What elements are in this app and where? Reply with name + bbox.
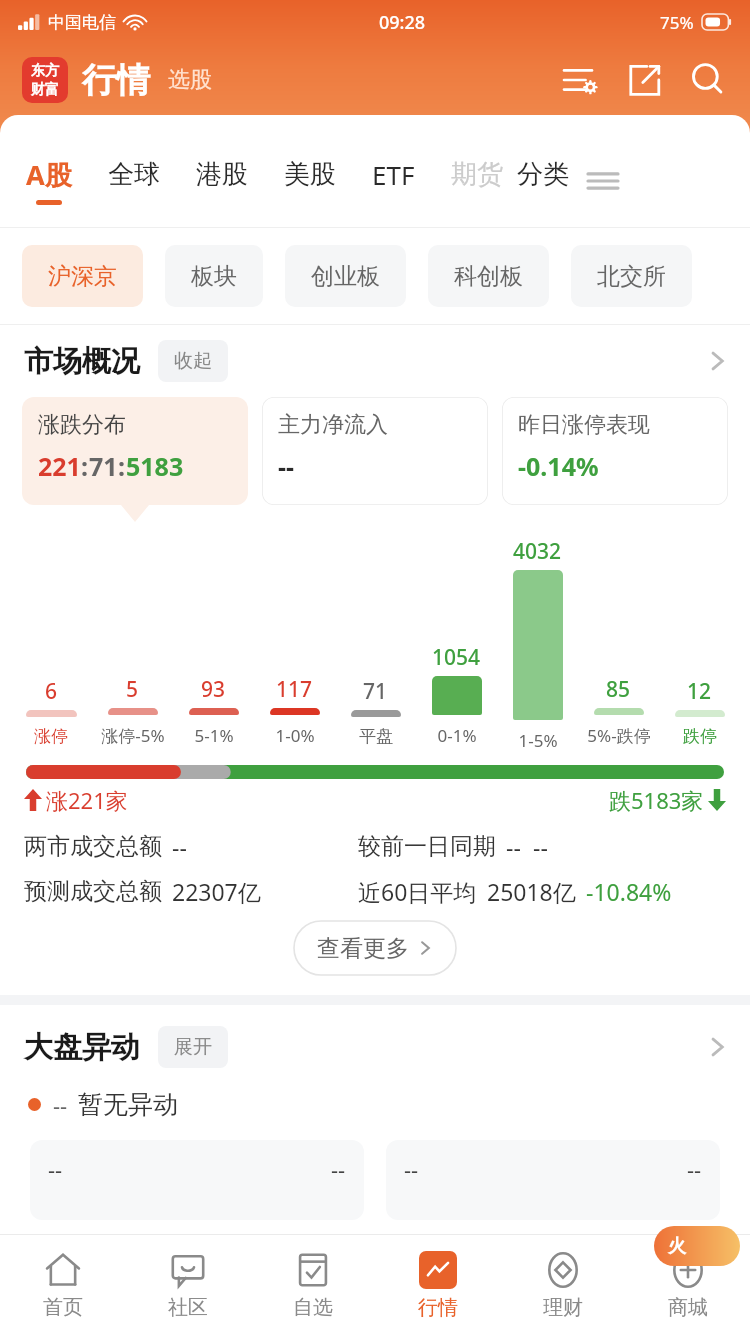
button[interactable]: More tabs [583, 161, 623, 201]
staticText: 71 [89, 449, 118, 483]
staticText: 创业板 [311, 262, 380, 291]
staticText: 221 [38, 449, 81, 483]
staticText: 市场概况 [24, 343, 140, 380]
staticText: 22307亿 [172, 876, 261, 907]
button[interactable]: 科创板 [428, 245, 549, 307]
staticText: 沪深京 [48, 262, 117, 291]
button[interactable]: ETF [372, 157, 415, 204]
staticText: 理财 [543, 1295, 583, 1320]
staticText: 1-5% [518, 729, 558, 747]
button[interactable]: 全球 [108, 158, 160, 203]
staticText: 财富 [31, 81, 59, 99]
staticText: 75% [660, 11, 694, 34]
staticText: 展开 [174, 1035, 212, 1059]
staticText: 71 [363, 677, 388, 706]
staticText: -- [687, 1154, 702, 1184]
staticText: 科创板 [454, 262, 523, 291]
staticText: 昨日涨停表现 [518, 411, 650, 439]
staticText: : [118, 449, 126, 483]
staticText: 主力净流入 [278, 411, 388, 439]
staticText: 商城 [668, 1295, 708, 1320]
button[interactable]: 行情 [375, 1235, 500, 1334]
button[interactable]: Share [622, 56, 670, 104]
staticText: 近60日平均 [358, 876, 477, 907]
staticText: 5%-跌停 [587, 724, 651, 747]
staticText: 跌停 [683, 726, 717, 747]
staticText: -- [533, 831, 548, 862]
staticText: -- [53, 1090, 68, 1120]
button[interactable]: -- [386, 1140, 720, 1220]
button[interactable]: 商城 [625, 1235, 750, 1334]
staticText: 预测成交总额 [24, 877, 162, 906]
button[interactable]: 收起 [158, 340, 228, 382]
staticText: 暂无异动 [78, 1089, 178, 1120]
button[interactable]: Search [684, 56, 732, 104]
staticText: 较前一日同期 [358, 832, 496, 861]
staticText: 117 [276, 675, 313, 704]
staticText: A股 [26, 156, 72, 193]
button[interactable]: 分类 [517, 158, 569, 203]
button[interactable]: 北交所 [571, 245, 692, 307]
staticText: 社区 [168, 1295, 208, 1320]
staticText: 涨停-5% [101, 724, 165, 747]
staticText: 09:28 [379, 10, 426, 35]
button[interactable]: 板块 [165, 245, 263, 307]
button[interactable]: 昨日涨停表现 [502, 397, 728, 505]
button[interactable]: 期货 [451, 158, 503, 203]
staticText: -- [48, 1154, 63, 1184]
button[interactable]: 首页 [0, 1235, 125, 1334]
staticText: 涨跌分布 [38, 411, 126, 439]
button[interactable]: 社区 [125, 1235, 250, 1334]
staticText: 93 [201, 675, 226, 704]
button[interactable]: 展开 [158, 1026, 228, 1068]
button[interactable]: A股 [26, 156, 72, 205]
staticText: 板块 [191, 262, 237, 291]
staticText: -- [404, 1154, 419, 1184]
staticText: 查看更多 [317, 934, 409, 963]
button[interactable]: 选股 [168, 66, 212, 94]
staticText: 1054 [432, 643, 481, 672]
staticText: 分类 [517, 158, 569, 191]
staticText: 4032 [513, 537, 562, 566]
staticText: -10.84% [586, 876, 672, 907]
button[interactable]: 市场概况 [0, 325, 750, 397]
staticText: 美股 [284, 158, 336, 191]
staticText: -- [278, 449, 295, 483]
button[interactable]: 创业板 [285, 245, 406, 307]
staticText: 两市成交总额 [24, 832, 162, 861]
button[interactable]: 大盘异动 [0, 1005, 750, 1089]
button[interactable]: 沪深京 [22, 245, 143, 307]
staticText: 中国电信 [48, 12, 116, 33]
button[interactable]: 主力净流入 [262, 397, 488, 505]
staticText: 行情 [82, 59, 150, 102]
staticText: 平盘 [359, 726, 393, 747]
button[interactable]: 港股 [196, 158, 248, 203]
staticText: 行情 [418, 1295, 458, 1320]
staticText: 5-1% [194, 724, 234, 747]
button[interactable]: 自选 [250, 1235, 375, 1334]
staticText: 选股 [168, 66, 212, 94]
staticText: 25018亿 [487, 876, 576, 907]
staticText: -- [506, 831, 521, 862]
staticText: 自选 [293, 1295, 333, 1320]
button[interactable]: 查看更多 [291, 921, 459, 975]
staticText: 涨221家 [46, 785, 128, 815]
staticText: 5 [126, 675, 139, 704]
staticText: 港股 [196, 158, 248, 191]
staticText: 6 [45, 677, 58, 706]
staticText: : [81, 449, 89, 483]
staticText: 火 [668, 1235, 686, 1258]
button[interactable]: 理财 [500, 1235, 625, 1334]
button[interactable]: Hot [654, 1226, 740, 1266]
staticText: 收起 [174, 349, 212, 373]
button[interactable]: 美股 [284, 158, 336, 203]
staticText: 85 [606, 675, 631, 704]
button[interactable]: Filter settings [556, 56, 604, 104]
staticText: ETF [372, 157, 415, 192]
staticText: 北交所 [597, 262, 666, 291]
button[interactable]: -- [30, 1140, 364, 1220]
staticText: 期货 [451, 158, 503, 191]
staticText: 5183 [126, 449, 184, 483]
button[interactable]: 涨跌分布 [22, 397, 248, 505]
staticText: 涨停 [34, 726, 68, 747]
